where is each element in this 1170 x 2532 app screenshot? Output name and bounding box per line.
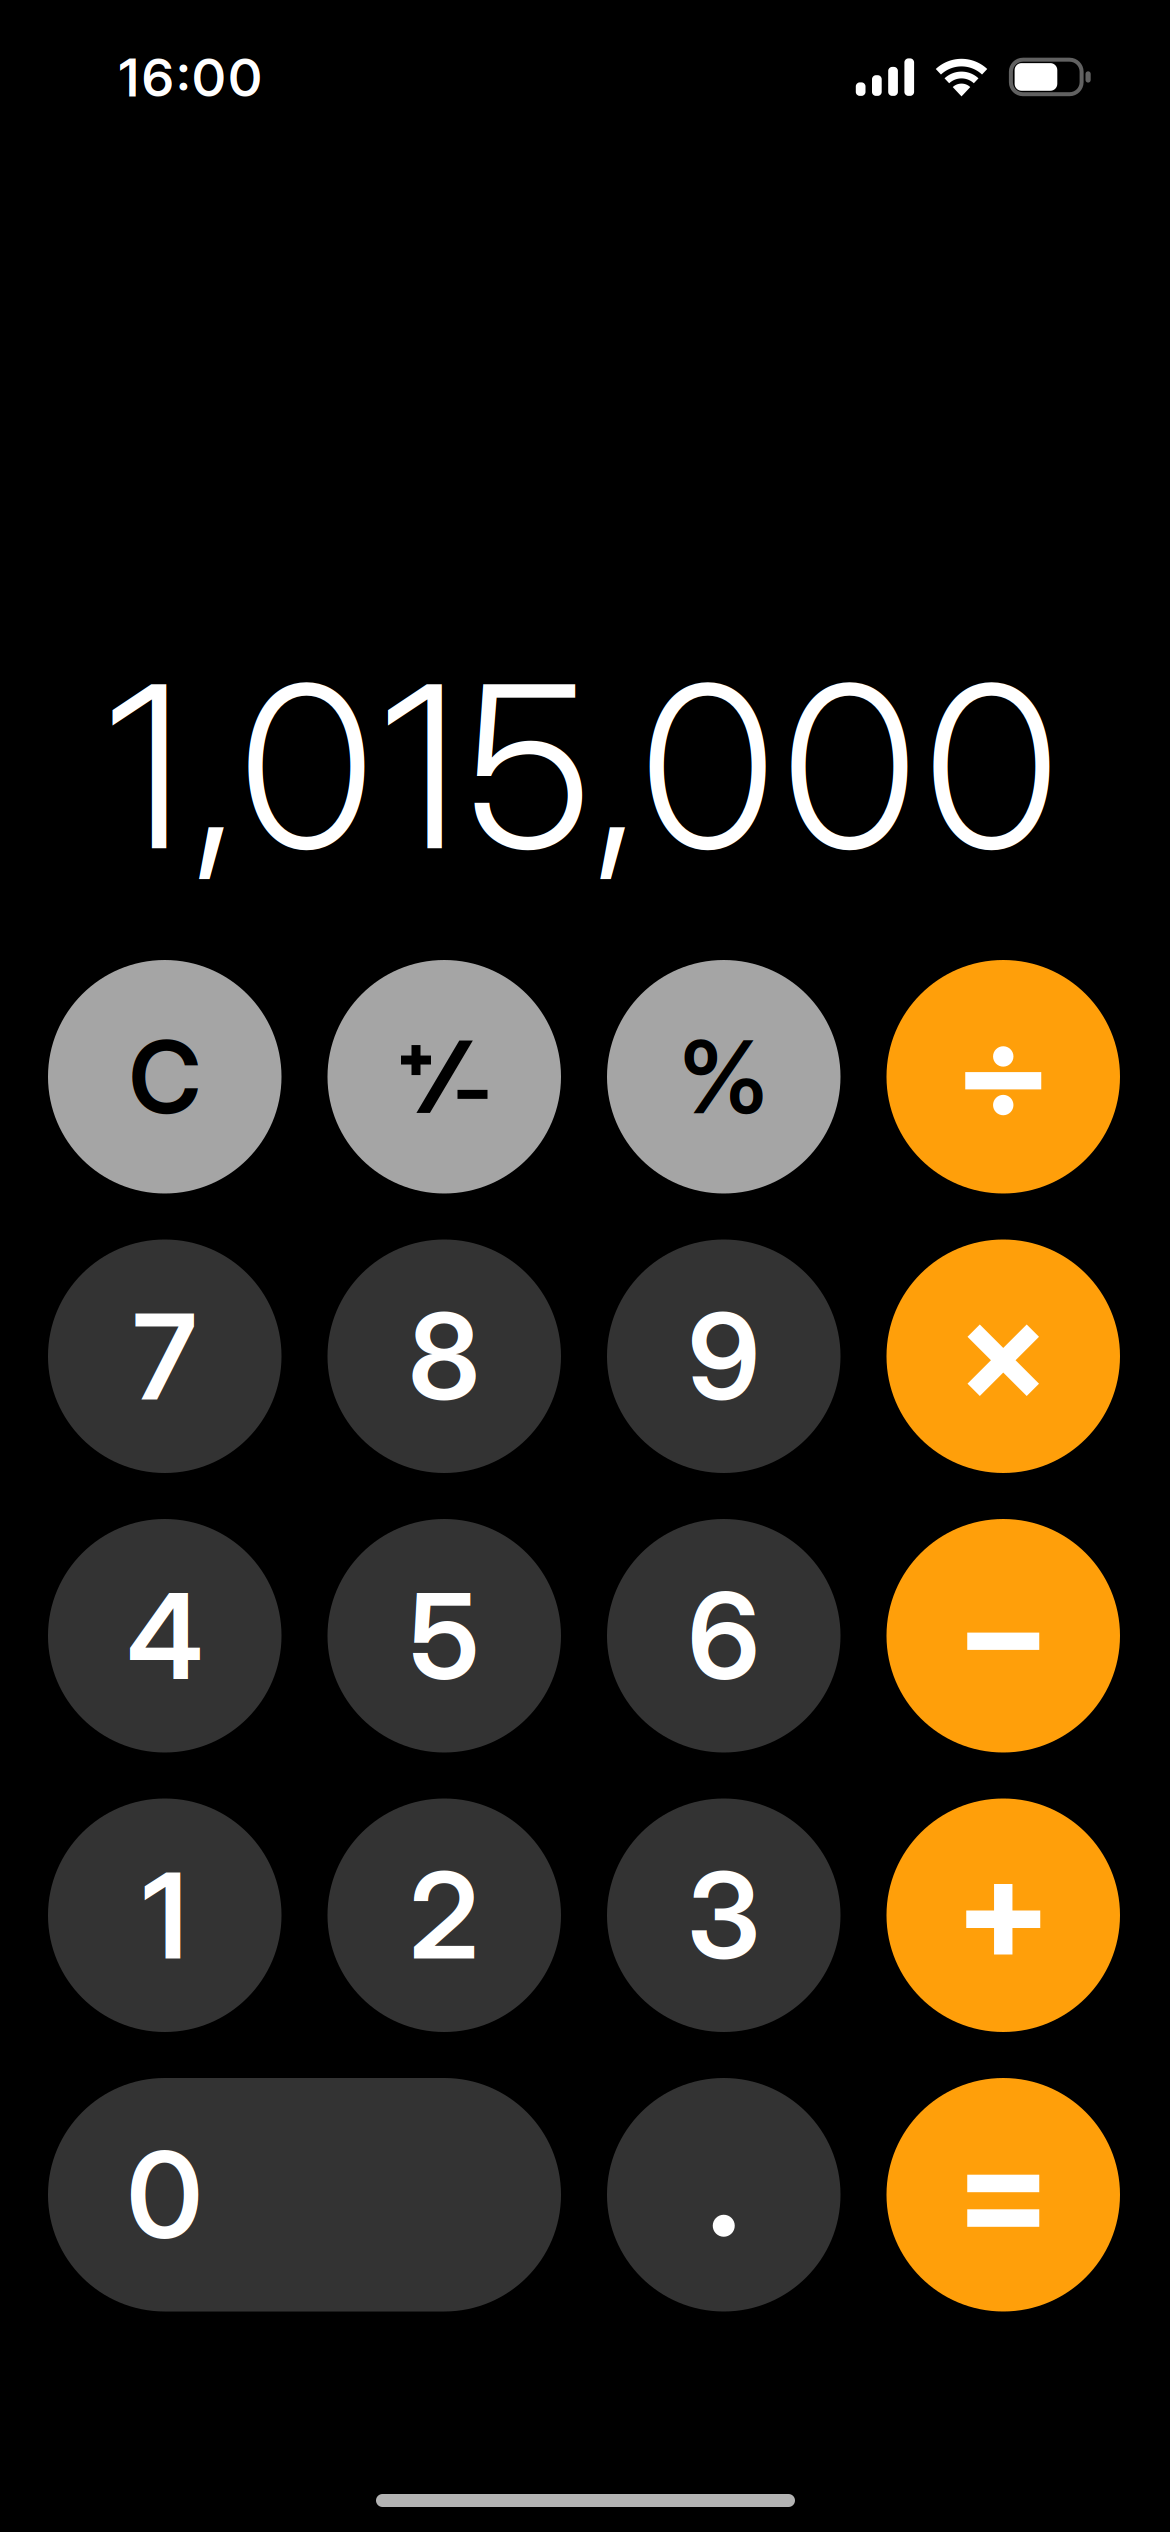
button[interactable]: 4 — [48, 1519, 281, 1752]
button[interactable]: Multiply — [886, 1239, 1120, 1473]
staticText: 6 — [688, 1564, 760, 1708]
staticText: 0 — [127, 2123, 203, 2267]
button[interactable]: 1 — [48, 1798, 281, 2032]
button[interactable]: 3 — [607, 1798, 840, 2032]
button[interactable]: 2 — [327, 1798, 561, 2032]
button[interactable]: 0 — [48, 2078, 561, 2311]
staticText: 8 — [408, 1284, 480, 1428]
staticText: 2 — [409, 1843, 479, 1987]
button[interactable]: Equals — [886, 2078, 1120, 2311]
staticText: % — [678, 1016, 769, 1137]
button[interactable]: 9 — [607, 1239, 840, 1473]
staticText: 9 — [688, 1284, 760, 1428]
button[interactable]: Divide — [886, 960, 1120, 1193]
button[interactable]: Decimal point — [607, 2078, 840, 2311]
button[interactable]: Clear — [48, 960, 281, 1193]
staticText: C — [129, 1016, 201, 1137]
staticText: 1,015,000 — [106, 630, 1058, 903]
staticText: 1 — [142, 1843, 187, 1987]
button[interactable]: Minus — [886, 1519, 1120, 1752]
button[interactable]: 7 — [48, 1239, 281, 1473]
staticText: 4 — [127, 1564, 203, 1708]
button[interactable]: 8 — [327, 1239, 561, 1473]
staticText: 3 — [687, 1843, 760, 1987]
button[interactable]: Percent — [607, 960, 840, 1193]
staticText: 16:00 — [119, 46, 261, 109]
button[interactable]: 5 — [327, 1519, 561, 1752]
button[interactable]: 6 — [607, 1519, 840, 1752]
staticText: 5 — [409, 1564, 479, 1708]
button[interactable]: Plus minus — [327, 960, 561, 1193]
staticText: 7 — [133, 1284, 197, 1428]
button[interactable]: Plus — [886, 1798, 1120, 2032]
